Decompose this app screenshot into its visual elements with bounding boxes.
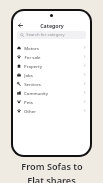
staticText: Community [24,90,48,96]
button[interactable]: Pets [13,97,90,106]
staticText: Search for category [26,32,65,38]
button[interactable]: Property [13,61,90,70]
button[interactable]: Motors [13,43,90,52]
button[interactable]: Community [13,88,90,97]
staticText: Services [24,81,41,87]
button[interactable]: Jobs [13,70,90,79]
staticText: Category [40,22,64,29]
staticText: From Sofas to [21,160,83,173]
button[interactable]: Back [16,21,25,30]
staticText: For sale [24,54,41,60]
button[interactable]: Search for category [17,31,86,39]
staticText: Flat shares [27,174,76,183]
staticText: Other [24,108,36,114]
button[interactable]: Other [13,106,90,115]
staticText: Property [24,63,42,69]
staticText: Pets [24,99,33,105]
staticText: Motors [24,45,39,51]
button[interactable]: Services [13,79,90,88]
button[interactable]: For sale [13,52,90,61]
staticText: Jobs [24,72,33,78]
